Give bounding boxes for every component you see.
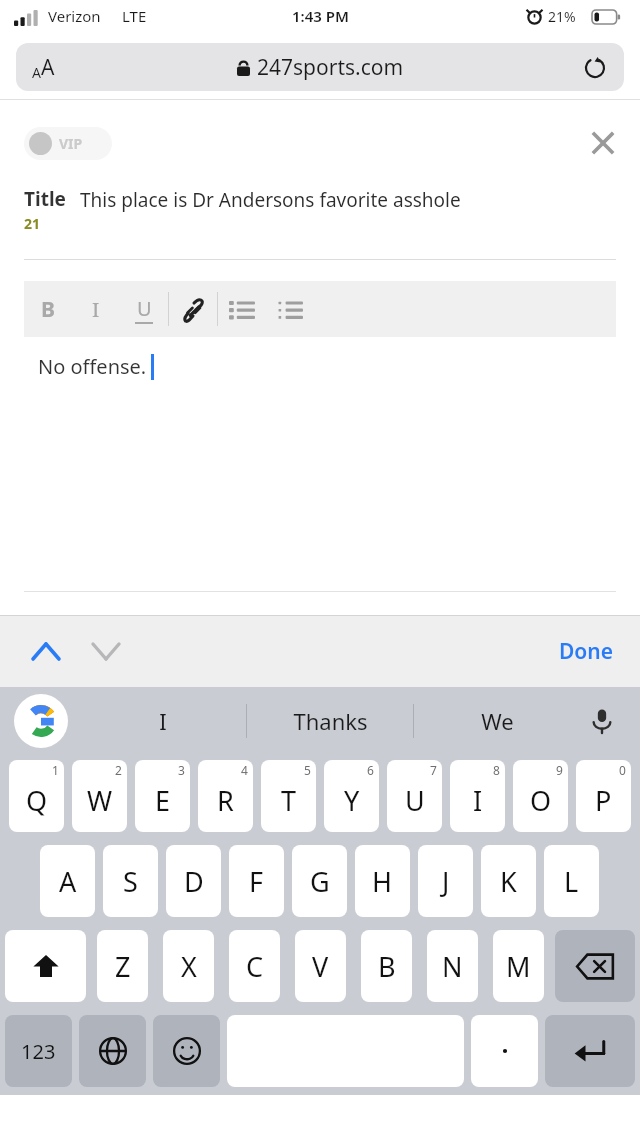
staticText: Y	[344, 782, 360, 819]
button[interactable]: 6	[324, 760, 379, 832]
staticText: 4	[241, 762, 248, 778]
button[interactable]: M	[493, 930, 544, 1002]
staticText: 21%	[548, 7, 576, 26]
button[interactable]: B	[361, 930, 412, 1002]
staticText: We	[481, 706, 514, 736]
button[interactable]: 7	[387, 760, 442, 832]
staticText: L	[564, 863, 579, 900]
button[interactable]: X	[163, 930, 214, 1002]
button[interactable]: S	[103, 845, 158, 917]
staticText: 5	[304, 762, 311, 778]
button[interactable]: Numbered list	[266, 281, 314, 337]
staticText: H	[372, 863, 393, 900]
button[interactable]: Bulleted list	[218, 281, 266, 337]
button[interactable]: G	[292, 845, 347, 917]
staticText: 2	[115, 762, 122, 778]
button[interactable]: C	[229, 930, 280, 1002]
staticText: B	[41, 295, 55, 324]
button[interactable]: 1	[9, 760, 64, 832]
button[interactable]: Reload page	[580, 52, 610, 82]
staticText: 1:43 PM	[292, 6, 349, 26]
staticText: W	[87, 782, 113, 819]
button[interactable]: 3	[135, 760, 190, 832]
button[interactable]: V	[295, 930, 346, 1002]
staticText: I	[159, 706, 167, 736]
staticText: K	[500, 863, 517, 900]
staticText: 9	[556, 762, 563, 778]
button[interactable]: Text size options	[16, 43, 624, 91]
staticText: E	[155, 782, 171, 819]
button[interactable]: Close	[580, 120, 626, 166]
button[interactable]: D	[166, 845, 221, 917]
button[interactable]: N	[427, 930, 478, 1002]
button[interactable]: L	[544, 845, 599, 917]
staticText: P	[595, 782, 612, 819]
button[interactable]: H	[355, 845, 410, 917]
staticText: I	[92, 296, 100, 323]
button[interactable]: Backspace	[555, 930, 635, 1002]
button[interactable]: Emoji	[153, 1015, 220, 1087]
button[interactable]: Thanks	[247, 687, 413, 755]
staticText: B	[378, 948, 396, 985]
staticText: Thanks	[293, 706, 368, 736]
staticText: 0	[619, 762, 626, 778]
staticText: Title	[24, 186, 66, 212]
staticText: F	[249, 863, 264, 900]
button[interactable]: Numbers	[5, 1015, 72, 1087]
staticText: Z	[115, 948, 131, 985]
staticText: 1	[52, 762, 59, 778]
button[interactable]: Bold	[24, 281, 72, 337]
staticText: A	[32, 63, 41, 82]
staticText: LTE	[122, 6, 147, 26]
staticText: Done	[559, 637, 614, 666]
button[interactable]: 5	[261, 760, 316, 832]
staticText: Q	[26, 782, 48, 819]
button[interactable]: Italic	[72, 281, 120, 337]
button[interactable]: VIP	[24, 127, 112, 160]
staticText: 6	[367, 762, 374, 778]
button[interactable]: Done	[551, 629, 622, 674]
button[interactable]: I	[80, 687, 246, 755]
staticText: 8	[493, 762, 500, 778]
button[interactable]: A	[40, 845, 95, 917]
button[interactable]: J	[418, 845, 473, 917]
staticText: G	[310, 863, 330, 900]
staticText: No offense.	[38, 353, 147, 380]
staticText: 3	[178, 762, 185, 778]
staticText: S	[123, 863, 138, 900]
button[interactable]: Underline	[120, 281, 168, 337]
button[interactable]: Shift	[5, 930, 86, 1002]
button[interactable]: Z	[97, 930, 148, 1002]
staticText: This place is Dr Andersons favorite assh…	[80, 187, 461, 213]
button[interactable]: F	[229, 845, 284, 917]
button[interactable]: Next field	[82, 627, 130, 675]
staticText: J	[442, 863, 450, 900]
button[interactable]: Voice input	[578, 697, 626, 745]
button[interactable]: 0	[576, 760, 631, 832]
staticText: 7	[430, 762, 437, 778]
button[interactable]: Enter	[545, 1015, 635, 1087]
staticText: A	[59, 863, 77, 900]
button[interactable]: Previous field	[22, 627, 70, 675]
staticText: X	[181, 948, 197, 985]
button[interactable]: K	[481, 845, 536, 917]
staticText: Verizon	[48, 6, 101, 26]
button[interactable]: Insert link	[169, 281, 217, 337]
staticText: D	[184, 863, 204, 900]
button[interactable]: 2	[72, 760, 127, 832]
button[interactable]: 9	[513, 760, 568, 832]
button[interactable]: Period	[471, 1015, 538, 1087]
button[interactable]: Change language	[79, 1015, 146, 1087]
staticText: I	[473, 782, 483, 819]
button[interactable]: Google search	[14, 694, 68, 748]
button[interactable]: Text size options	[32, 53, 55, 82]
staticText: T	[281, 782, 297, 819]
staticText: 247sports.com	[257, 53, 404, 82]
button[interactable]: 4	[198, 760, 253, 832]
button[interactable]: We	[414, 687, 580, 755]
staticText: M	[506, 948, 531, 985]
staticText: 21	[24, 214, 41, 233]
staticText: 123	[21, 1038, 56, 1065]
button[interactable]: 8	[450, 760, 505, 832]
